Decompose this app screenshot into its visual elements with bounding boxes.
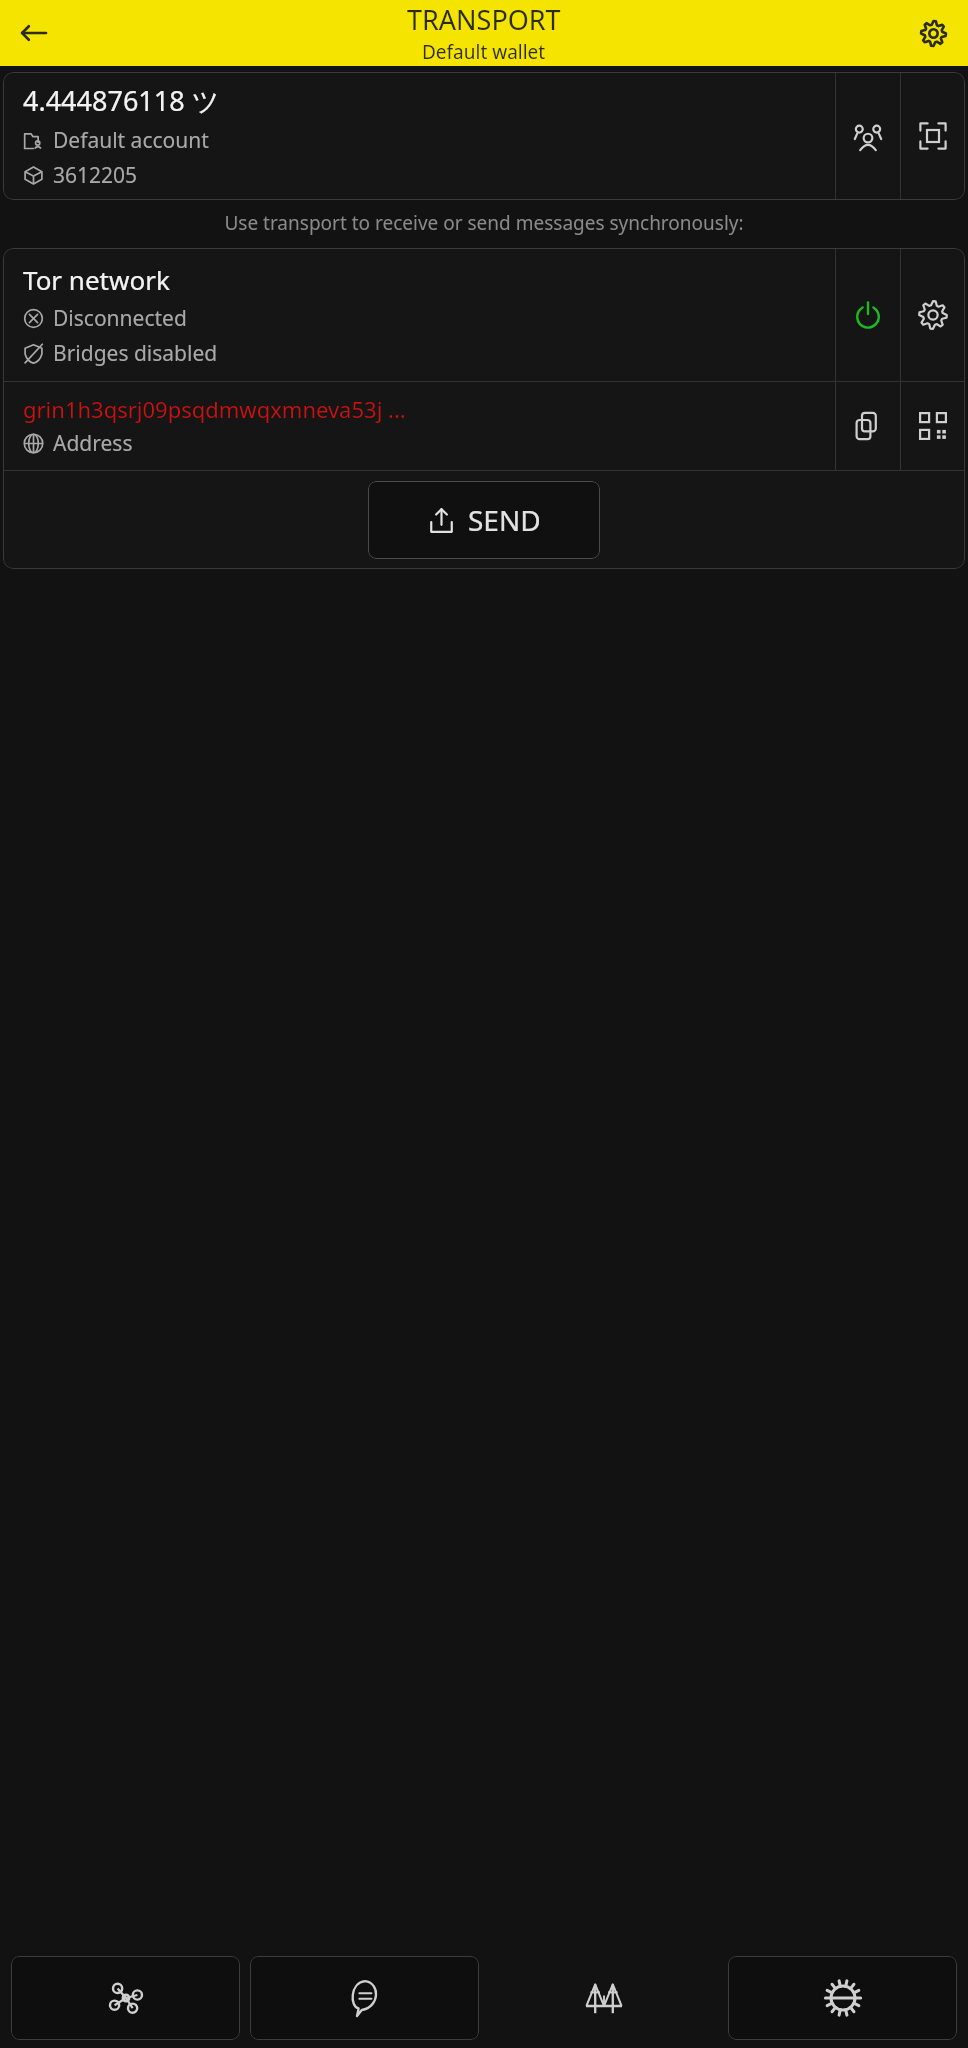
button[interactable]: Show QR code [901, 382, 965, 470]
button[interactable]: Transport [489, 1956, 718, 2040]
staticText: 4.444876118 ツ [23, 82, 220, 119]
button[interactable]: 4.444876118 ツ [3, 72, 835, 200]
staticText: Bridges disabled [53, 339, 218, 368]
button[interactable]: Back [4, 4, 62, 62]
staticText: Tor network [23, 262, 170, 297]
staticText: Use transport to receive or send message… [34, 210, 934, 236]
button[interactable]: Tor settings [901, 248, 965, 381]
staticText: Disconnected [53, 304, 187, 333]
staticText: 3612205 [53, 161, 138, 190]
button[interactable]: Toggle Tor [836, 248, 900, 381]
button[interactable]: Chats [250, 1956, 479, 2040]
staticText: Address [53, 429, 133, 458]
button[interactable]: Settings [728, 1956, 957, 2040]
button[interactable]: Network [11, 1956, 240, 2040]
button[interactable]: Scan [901, 72, 965, 200]
staticText: Default account [53, 126, 209, 155]
button[interactable]: SEND [368, 481, 600, 559]
button[interactable]: Settings [904, 4, 962, 62]
staticText: SEND [468, 501, 541, 539]
staticText: TRANSPORT [407, 1, 561, 38]
staticText: grin1h3qsrj09psqdmwqxmneva53j ... [23, 394, 406, 424]
button[interactable]: Tor network [3, 248, 835, 381]
button[interactable]: Accounts [836, 72, 900, 200]
staticText: Default wallet [422, 39, 546, 65]
button[interactable]: grin1h3qsrj09psqdmwqxmneva53j ... [3, 382, 835, 470]
button[interactable]: Copy address [836, 382, 900, 470]
